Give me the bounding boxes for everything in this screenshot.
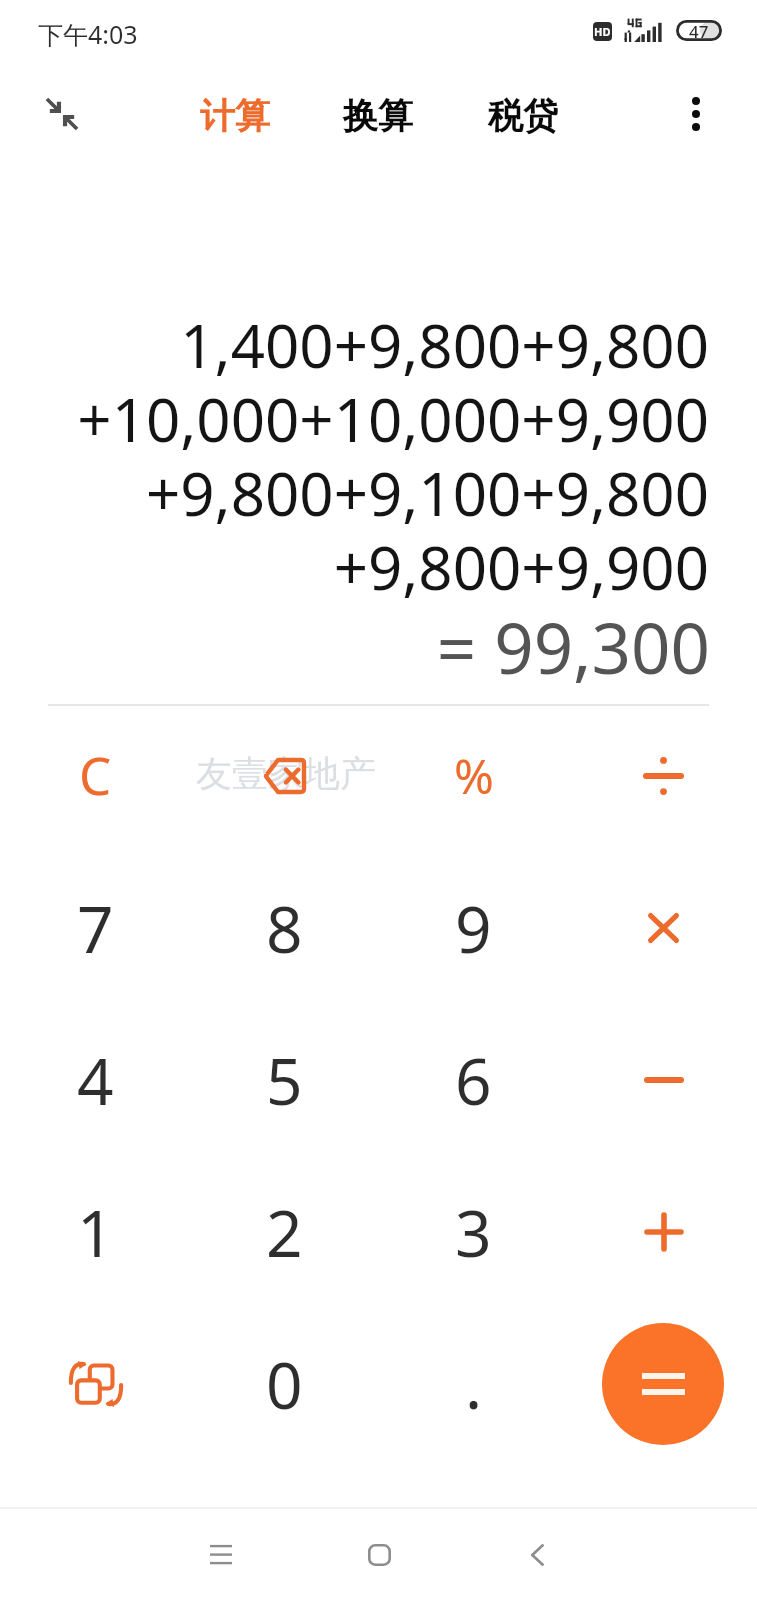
button[interactable]: 7 [1,852,190,1004]
staticText: 友壹家地产 [196,751,376,796]
button[interactable]: Recent apps [171,1510,271,1600]
staticText: 8 [266,885,303,972]
staticText: % [454,743,494,808]
staticText: 7 [77,885,114,972]
button[interactable]: Convert [1,1308,190,1460]
staticText: 2 [266,1189,303,1276]
staticText: 1 [77,1189,114,1276]
staticText: 计算 [200,94,270,138]
button[interactable]: 税贷 [468,86,578,146]
button[interactable]: % [379,699,568,851]
button[interactable]: 0 [190,1308,379,1460]
staticText: = 99,300 [0,600,710,694]
button[interactable]: 4 [1,1004,190,1156]
staticText: HD [594,24,611,39]
staticText: 换算 [343,94,413,138]
button[interactable]: . [379,1308,568,1460]
staticText: C [79,740,112,809]
button[interactable]: Back [487,1510,587,1600]
staticText: 下午4:03 [38,17,138,51]
button[interactable]: Multiply [569,852,757,1004]
button[interactable]: 计算 [180,86,290,146]
button[interactable]: Subtract [569,1004,757,1156]
button[interactable]: 2 [190,1156,379,1308]
staticText: . [465,1341,483,1428]
button[interactable]: 换算 [323,86,433,146]
button[interactable]: 9 [379,852,568,1004]
button[interactable]: Divide [569,700,757,852]
staticText: 税贷 [488,94,558,138]
button[interactable]: Home [329,1510,429,1600]
button[interactable]: 8 [190,852,379,1004]
button[interactable]: 6 [379,1004,568,1156]
button[interactable]: Add [569,1156,757,1308]
staticText: 5 [266,1037,303,1124]
staticText: +10,000+10,000+9,900 [0,378,709,460]
staticText: 3 [455,1189,492,1276]
button[interactable]: 1 [1,1156,190,1308]
staticText: 0 [266,1341,303,1428]
staticText: +9,800+9,100+9,800 [0,452,709,534]
button[interactable]: Equals [602,1323,724,1445]
button[interactable]: C [1,698,190,850]
staticText: +9,800+9,900 [0,526,709,608]
staticText: 4 [77,1037,114,1124]
staticText: 9 [455,885,492,972]
button[interactable]: 5 [190,1004,379,1156]
button[interactable]: Collapse [32,84,92,144]
staticText: 6 [455,1037,492,1124]
staticText: 47 [689,20,709,41]
staticText: 1,400+9,800+9,800 [0,304,709,386]
button[interactable]: Backspace [190,700,379,852]
button[interactable]: 3 [379,1156,568,1308]
button[interactable]: More options [666,84,726,144]
